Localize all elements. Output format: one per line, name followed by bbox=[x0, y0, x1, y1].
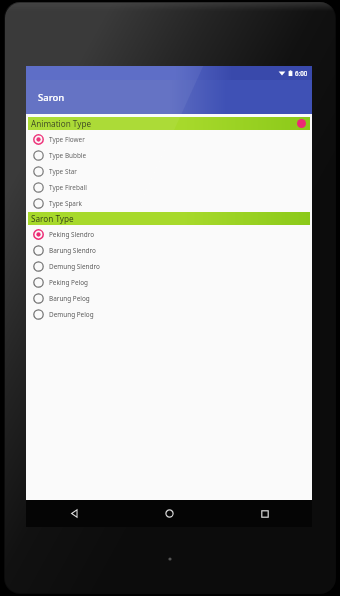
staticText: Barung Pelog bbox=[49, 294, 90, 303]
button[interactable]: Saron Type bbox=[28, 212, 310, 225]
staticText: Barung Slendro bbox=[49, 246, 96, 255]
staticText: 6:00 bbox=[295, 69, 308, 77]
staticText: Type Flower bbox=[49, 135, 85, 144]
button[interactable]: Type Star bbox=[26, 163, 312, 179]
staticText: Demung Slendro bbox=[49, 262, 100, 271]
staticText: Peking Slendro bbox=[49, 230, 95, 239]
button[interactable]: Type Bubble bbox=[26, 147, 312, 163]
button[interactable]: Type Fireball bbox=[26, 179, 312, 195]
button[interactable]: Back bbox=[26, 500, 122, 527]
button[interactable]: Peking Slendro bbox=[26, 226, 312, 242]
button[interactable]: Barung Slendro bbox=[26, 242, 312, 258]
staticText: Demung Pelog bbox=[49, 310, 94, 319]
button[interactable]: Type Flower bbox=[26, 131, 312, 147]
staticText: Peking Pelog bbox=[49, 278, 88, 287]
staticText: Saron Type bbox=[31, 213, 74, 224]
staticText: Type Fireball bbox=[49, 183, 87, 192]
button[interactable]: Peking Pelog bbox=[26, 274, 312, 290]
button[interactable]: Animation Type bbox=[28, 117, 310, 130]
button[interactable]: Barung Pelog bbox=[26, 290, 312, 306]
button[interactable]: Type Spark bbox=[26, 195, 312, 211]
button[interactable]: Recent apps bbox=[217, 500, 312, 527]
staticText: Saron bbox=[38, 91, 65, 104]
staticText: Type Bubble bbox=[49, 151, 87, 160]
button[interactable]: Demung Pelog bbox=[26, 306, 312, 322]
button[interactable]: Demung Slendro bbox=[26, 258, 312, 274]
other: Color indicator bbox=[297, 119, 306, 128]
button[interactable]: Home bbox=[122, 500, 217, 527]
staticText: Type Star bbox=[49, 167, 77, 176]
staticText: Type Spark bbox=[49, 199, 82, 208]
staticText: Animation Type bbox=[31, 118, 92, 129]
